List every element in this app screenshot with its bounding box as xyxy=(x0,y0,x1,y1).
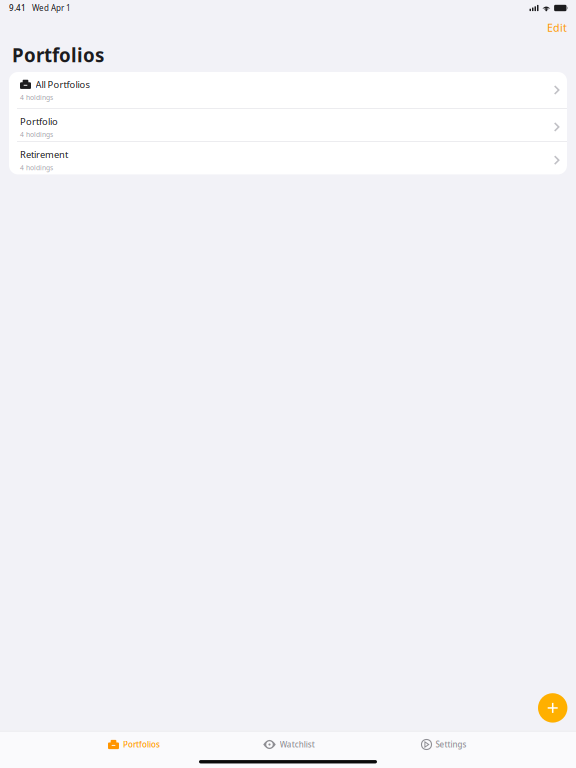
button[interactable]: Portfolios xyxy=(56,731,211,757)
staticText: Wed Apr 1 xyxy=(26,3,71,13)
staticText: All Portfolios xyxy=(35,78,89,90)
staticText: Portfolio xyxy=(20,115,58,127)
button[interactable]: Settings xyxy=(366,731,521,757)
staticText: 4 holdings xyxy=(20,93,53,102)
staticText: Portfolios xyxy=(123,739,160,750)
button[interactable]: Retirement xyxy=(9,142,567,174)
button[interactable]: Portfolio xyxy=(9,109,567,142)
button[interactable]: Edit xyxy=(541,16,573,39)
staticText: Settings xyxy=(435,739,466,750)
staticText: Retirement xyxy=(20,148,68,161)
staticText: Portfolios xyxy=(12,43,104,67)
staticText: 9.41 xyxy=(9,3,26,13)
staticText: 4 holdings xyxy=(20,130,53,139)
staticText: Watchlist xyxy=(280,739,315,750)
staticText: Edit xyxy=(547,20,567,35)
staticText: 4 holdings xyxy=(20,163,53,172)
button[interactable]: Watchlist xyxy=(211,731,366,757)
button[interactable]: Add portfolio xyxy=(538,693,567,723)
button[interactable]: All Portfolios xyxy=(9,72,567,109)
